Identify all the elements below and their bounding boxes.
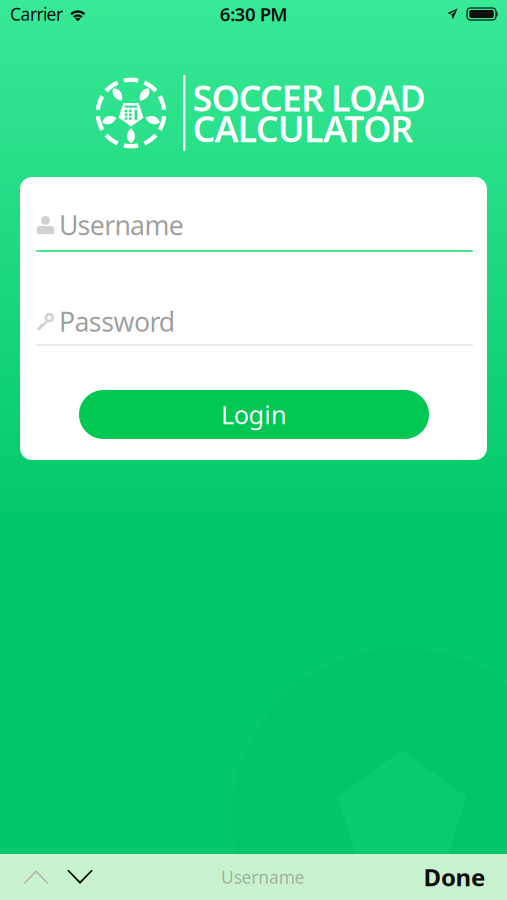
staticText: Username [221,865,305,888]
staticText: SOCCER LOAD [192,74,425,121]
button[interactable]: Next field [58,854,102,900]
button[interactable]: Username [36,210,473,252]
staticText: CALCULATOR [192,104,413,152]
staticText: 6:30 PM [220,2,287,26]
staticText: Password [59,304,175,339]
button[interactable]: Login [79,390,429,439]
button[interactable]: Password [36,308,473,344]
button[interactable]: Done [423,854,485,900]
staticText: Username [59,207,184,243]
button[interactable]: Previous field [14,854,58,900]
staticText: Login [221,398,287,431]
staticText: Done [423,861,485,893]
staticText: Carrier [10,2,63,25]
